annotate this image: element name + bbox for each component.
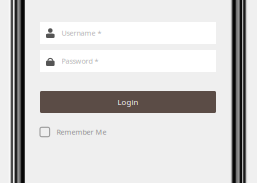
staticText: Username * xyxy=(62,28,102,38)
button[interactable]: Username * xyxy=(40,22,216,44)
staticText: Login xyxy=(117,97,138,107)
button[interactable]: Password * xyxy=(40,50,216,72)
button[interactable]: Login xyxy=(40,91,216,113)
staticText: Password * xyxy=(62,56,99,66)
button[interactable]: Remember Me xyxy=(40,127,216,137)
staticText: Remember Me xyxy=(57,127,107,137)
